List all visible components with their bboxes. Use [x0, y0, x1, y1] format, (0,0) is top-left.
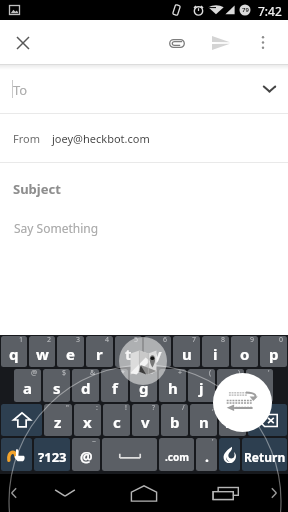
- staticText: ?123: [38, 448, 67, 466]
- button[interactable]: Attach file: [162, 28, 192, 58]
- staticText: ?: [152, 404, 156, 413]
- staticText: 8: [221, 336, 226, 345]
- button[interactable]: Back: [0, 479, 28, 507]
- button[interactable]: g: [130, 369, 157, 402]
- staticText: i: [213, 344, 218, 364]
- staticText: *: [121, 369, 125, 378]
- staticText: p: [269, 344, 279, 364]
- button[interactable]: f: [101, 369, 128, 402]
- button[interactable]: [248, 404, 287, 436]
- button[interactable]: z: [44, 404, 72, 436]
- staticText: ,: [212, 404, 214, 413]
- button[interactable]: [102, 438, 157, 471]
- button[interactable]: Close: [8, 28, 37, 57]
- button[interactable]: Maps suggestion: [119, 337, 167, 385]
- button[interactable]: m: [219, 404, 246, 436]
- button[interactable]: @: [72, 438, 100, 471]
- button[interactable]: Subject: [0, 163, 288, 208]
- button[interactable]: u: [173, 336, 200, 367]
- staticText: h: [168, 378, 178, 398]
- staticText: v: [141, 412, 150, 432]
- staticText: 6: [163, 336, 168, 345]
- staticText: 4: [105, 336, 110, 345]
- button[interactable]: Home: [127, 476, 161, 510]
- staticText: ': [212, 438, 214, 447]
- button[interactable]: Expand recipients: [256, 76, 282, 102]
- button[interactable]: k: [217, 369, 244, 402]
- staticText: 3: [76, 336, 81, 345]
- staticText: 7: [192, 336, 197, 345]
- staticText: f: [112, 378, 118, 398]
- button[interactable]: Return: [242, 438, 287, 471]
- staticText: 0: [279, 336, 284, 345]
- button[interactable]: [1, 404, 42, 436]
- button[interactable]: v: [132, 404, 159, 436]
- button[interactable]: .com: [159, 438, 194, 471]
- staticText: 79: [242, 6, 249, 14]
- staticText: From: [13, 131, 40, 146]
- staticText: Say Something: [14, 220, 99, 236]
- staticText: 1: [19, 336, 24, 345]
- staticText: z: [54, 412, 62, 432]
- button[interactable]: .: [196, 438, 217, 471]
- staticText: 2: [47, 336, 52, 345]
- button[interactable]: Hide keyboard: [51, 479, 79, 507]
- button[interactable]: c: [103, 404, 130, 436]
- button[interactable]: More options: [249, 28, 277, 56]
- button[interactable]: Say Something: [0, 208, 288, 248]
- button[interactable]: i: [202, 336, 229, 367]
- staticText: Return: [244, 449, 286, 465]
- staticText: n: [199, 412, 209, 432]
- staticText: +: [178, 369, 183, 378]
- staticText: c: [113, 412, 121, 432]
- button[interactable]: Switch keyboard: [213, 373, 272, 432]
- button[interactable]: x: [74, 404, 101, 436]
- button[interactable]: Recent apps: [211, 478, 241, 508]
- staticText: :: [96, 404, 98, 413]
- button[interactable]: o: [231, 336, 258, 367]
- staticText: d: [81, 378, 91, 398]
- button[interactable]: [219, 438, 240, 471]
- staticText: ": [66, 404, 69, 413]
- button[interactable]: r: [86, 336, 113, 367]
- button[interactable]: e: [57, 336, 84, 367]
- staticText: u: [182, 344, 192, 364]
- staticText: $: [62, 369, 67, 378]
- button[interactable]: Send: [206, 28, 236, 58]
- staticText: 9: [250, 336, 255, 345]
- staticText: /: [182, 404, 185, 413]
- button[interactable]: l: [246, 369, 273, 402]
- staticText: ): [238, 369, 241, 378]
- button[interactable]: y: [144, 336, 171, 367]
- button[interactable]: a: [14, 369, 41, 402]
- staticText: r: [96, 344, 103, 364]
- button[interactable]: ?123: [34, 438, 70, 471]
- button[interactable]: [1, 438, 32, 471]
- button[interactable]: w: [29, 336, 55, 367]
- button[interactable]: From: [13, 131, 150, 146]
- staticText: k: [226, 378, 236, 398]
- staticText: &: [90, 369, 96, 378]
- button[interactable]: p: [260, 336, 287, 367]
- staticText: joey@heckbot.com: [52, 131, 150, 146]
- staticText: To: [13, 81, 28, 99]
- staticText: g: [139, 378, 149, 398]
- button[interactable]: Forward: [260, 479, 288, 507]
- button[interactable]: n: [190, 404, 217, 436]
- button[interactable]: d: [72, 369, 99, 402]
- button[interactable]: t: [115, 336, 142, 367]
- staticText: .com: [165, 450, 189, 464]
- staticText: .: [205, 447, 209, 466]
- button[interactable]: b: [161, 404, 188, 436]
- staticText: Subject: [13, 180, 61, 198]
- staticText: l: [257, 378, 262, 398]
- staticText: s: [53, 378, 61, 398]
- staticText: e: [66, 344, 75, 364]
- button[interactable]: h: [159, 369, 186, 402]
- button[interactable]: j: [188, 369, 215, 402]
- button[interactable]: s: [43, 369, 70, 402]
- staticText: !: [125, 404, 127, 413]
- button[interactable]: q: [1, 336, 27, 367]
- staticText: (: [209, 369, 212, 378]
- button[interactable]: To: [0, 65, 288, 114]
